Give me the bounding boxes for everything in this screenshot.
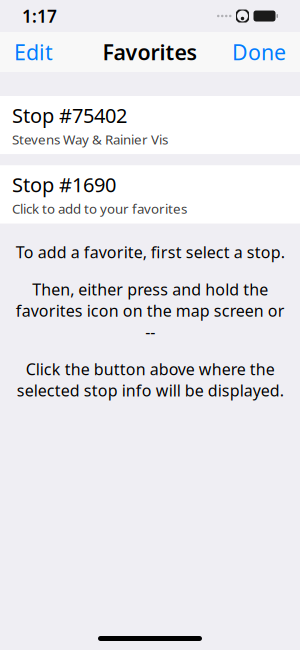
staticText: Click to add to your favorites (12, 200, 187, 217)
staticText: To add a favorite, first select a stop. (15, 241, 284, 263)
button[interactable]: Stop #1690 (0, 165, 300, 224)
staticText: Stop #1690 (12, 171, 116, 198)
staticText: Stevens Way & Rainier Vis (12, 131, 168, 148)
button[interactable]: Stop #75402 (0, 96, 300, 154)
staticText: 1:17 (22, 4, 57, 27)
staticText: Favorites (102, 38, 197, 66)
button[interactable]: Edit (0, 30, 67, 74)
staticText: Done (232, 38, 286, 66)
button[interactable]: Done (218, 30, 300, 74)
staticText: Click the button above where the selecte… (16, 358, 283, 401)
staticText: Edit (14, 38, 53, 66)
staticText: Stop #75402 (12, 102, 127, 129)
staticText: Then, either press and hold the favorite… (15, 279, 284, 342)
